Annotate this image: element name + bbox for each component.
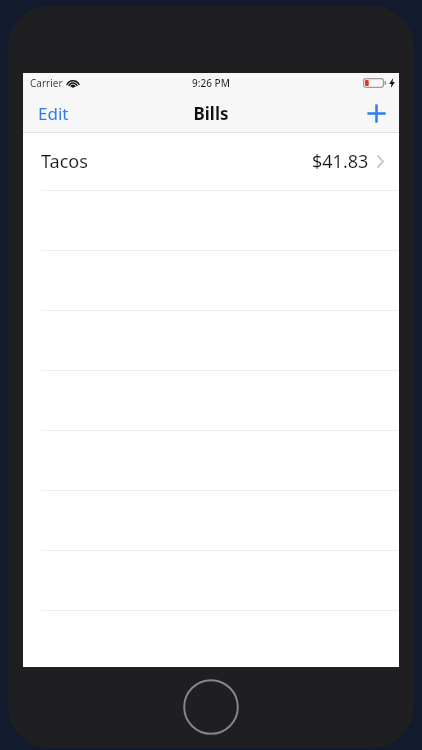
staticText: 9:26 PM <box>192 76 230 90</box>
staticText: Carrier <box>30 76 63 90</box>
button[interactable]: Add bill <box>353 93 399 133</box>
button[interactable]: Home <box>183 679 239 735</box>
staticText: Bills <box>193 102 229 125</box>
button[interactable]: Tacos <box>23 133 399 190</box>
staticText: Edit <box>38 102 69 125</box>
button[interactable]: Edit <box>23 93 84 133</box>
staticText: $41.83 <box>312 149 369 174</box>
staticText: Tacos <box>41 149 88 174</box>
